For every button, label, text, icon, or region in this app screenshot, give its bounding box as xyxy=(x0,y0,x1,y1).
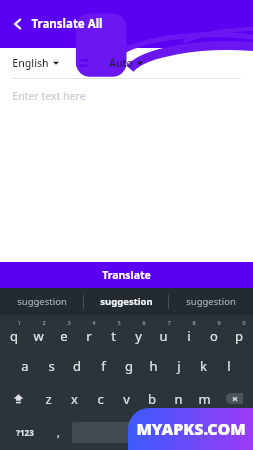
button[interactable]: suggestion xyxy=(84,288,168,315)
staticText: h xyxy=(149,357,158,375)
button[interactable]: n xyxy=(165,382,191,415)
staticText: Auto xyxy=(109,56,133,70)
button[interactable]: English xyxy=(12,52,59,74)
button[interactable]: d xyxy=(64,349,90,382)
button[interactable]: k xyxy=(191,349,216,382)
button[interactable]: 8 xyxy=(176,315,201,349)
button[interactable]: 2 xyxy=(26,315,51,349)
staticText: q xyxy=(10,327,18,345)
button[interactable]: b xyxy=(139,382,165,415)
button[interactable]: Back xyxy=(8,12,107,36)
button[interactable]: z xyxy=(35,382,61,415)
staticText: Enter text here xyxy=(12,89,86,103)
staticText: o xyxy=(210,327,218,345)
button[interactable]: 3 xyxy=(51,315,76,349)
staticText: 7 xyxy=(167,319,171,326)
staticText: 5 xyxy=(117,319,121,326)
button[interactable]: 9 xyxy=(201,315,226,349)
staticText: Translate xyxy=(102,268,151,282)
staticText: j xyxy=(177,357,181,375)
button[interactable]: 6 xyxy=(126,315,151,349)
button[interactable]: suggestion xyxy=(0,288,83,315)
button[interactable]: g xyxy=(116,349,141,382)
button[interactable]: suggestion xyxy=(169,288,253,315)
staticText: suggestion xyxy=(186,295,236,308)
staticText: m xyxy=(198,390,211,408)
staticText: 1 xyxy=(17,319,21,326)
staticText: p xyxy=(235,327,243,345)
staticText: , xyxy=(57,425,60,440)
button[interactable]: . xyxy=(181,415,208,450)
staticText: n xyxy=(174,390,183,408)
staticText: ?123 xyxy=(16,427,34,438)
button[interactable]: Backspace xyxy=(217,382,251,415)
staticText: i xyxy=(187,327,191,345)
staticText: 0 xyxy=(242,319,246,326)
button[interactable]: 1 xyxy=(2,315,26,349)
button[interactable]: j xyxy=(166,349,191,382)
staticText: 8 xyxy=(192,319,196,326)
button[interactable]: Shift xyxy=(2,382,35,415)
staticText: c xyxy=(97,390,104,408)
button[interactable]: l xyxy=(216,349,241,382)
staticText: e xyxy=(60,327,68,345)
button[interactable]: Auto xyxy=(109,52,143,74)
staticText: . xyxy=(193,425,196,440)
button[interactable]: Swap languages xyxy=(75,54,93,72)
staticText: 9 xyxy=(217,319,221,326)
staticText: MYAPKS.COM xyxy=(136,418,246,440)
staticText: d xyxy=(73,357,81,375)
button[interactable]: f xyxy=(90,349,116,382)
button[interactable]: x xyxy=(61,382,87,415)
staticText: f xyxy=(101,357,106,375)
staticText: b xyxy=(148,390,156,408)
staticText: Translate All xyxy=(31,16,103,32)
button[interactable]: c xyxy=(87,382,113,415)
button[interactable]: , xyxy=(45,415,72,450)
staticText: 6 xyxy=(142,319,146,326)
staticText: suggestion xyxy=(100,295,153,308)
staticText: English xyxy=(12,56,49,70)
button[interactable]: Translate xyxy=(0,262,253,288)
button[interactable]: s xyxy=(38,349,64,382)
button[interactable]: m xyxy=(191,382,217,415)
staticText: u xyxy=(159,327,168,345)
staticText: x xyxy=(71,390,78,408)
staticText: 3 xyxy=(67,319,71,326)
staticText: g xyxy=(125,357,133,375)
button[interactable]: 0 xyxy=(226,315,251,349)
staticText: r xyxy=(86,327,92,345)
button[interactable]: h xyxy=(141,349,166,382)
staticText: z xyxy=(45,390,52,408)
staticText: v xyxy=(123,390,130,408)
staticText: y xyxy=(135,327,142,345)
button[interactable]: Enter xyxy=(208,415,249,450)
button[interactable]: 7 xyxy=(151,315,176,349)
staticText: s xyxy=(48,357,55,375)
button[interactable]: ?123 xyxy=(4,415,45,450)
staticText: t xyxy=(111,327,116,345)
staticText: 2 xyxy=(42,319,46,326)
staticText: suggestion xyxy=(17,295,67,308)
staticText: k xyxy=(200,357,207,375)
button[interactable]: 5 xyxy=(101,315,126,349)
staticText: 4 xyxy=(92,319,96,326)
button[interactable]: 4 xyxy=(76,315,101,349)
other: Back xyxy=(12,18,24,30)
staticText: w xyxy=(33,327,44,345)
button[interactable]: Enter text here xyxy=(0,79,253,262)
button[interactable]: Space xyxy=(72,422,181,443)
staticText: l xyxy=(227,357,231,375)
button[interactable]: v xyxy=(113,382,139,415)
button[interactable]: a xyxy=(12,349,38,382)
staticText: a xyxy=(21,357,29,375)
